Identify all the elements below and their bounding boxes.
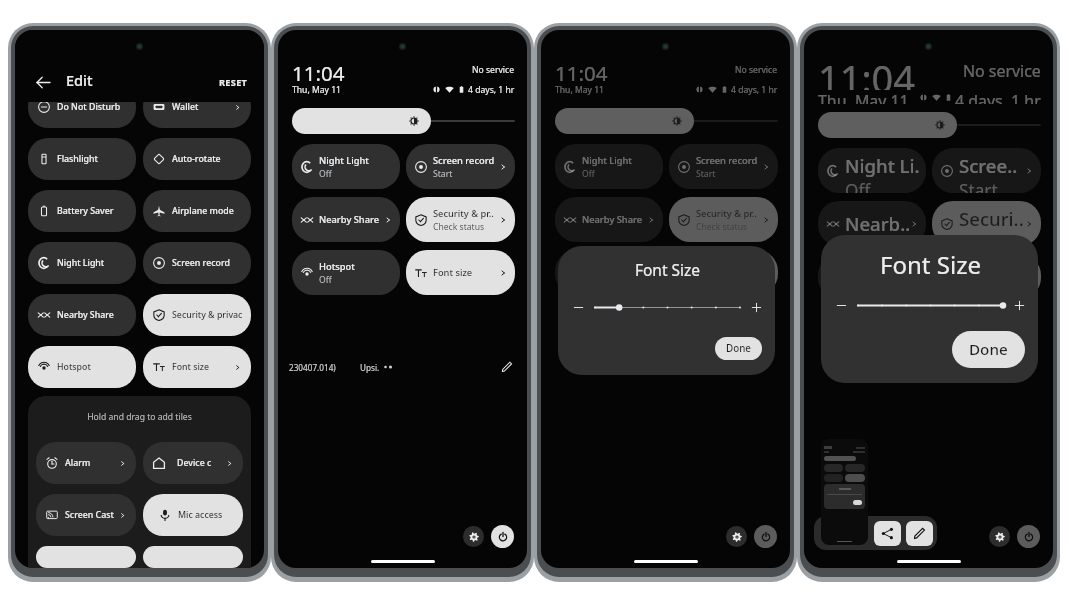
button[interactable]: Edit — [499, 359, 515, 375]
staticText: Nearby Share — [319, 213, 380, 226]
staticText: Start — [433, 168, 453, 180]
button[interactable]: RESET — [215, 74, 252, 91]
button[interactable] — [36, 546, 136, 568]
staticText: Start — [696, 168, 716, 180]
button[interactable]: Edit screenshot — [906, 521, 933, 546]
button[interactable]: Security & privacy — [143, 294, 251, 336]
staticText: 11:04 — [555, 59, 608, 81]
staticText: Start — [959, 179, 998, 193]
button[interactable]: Nearby Share — [555, 197, 663, 242]
staticText: 4 days, 1 hr — [955, 90, 1041, 104]
button[interactable]: Do Not Disturb — [28, 86, 136, 128]
button[interactable]: Security & pr.. — [406, 197, 515, 242]
staticText: Hotspot — [57, 361, 91, 373]
button[interactable]: Hotspot — [28, 346, 136, 388]
button[interactable]: Share — [874, 521, 901, 546]
button[interactable]: Flashlight — [28, 138, 136, 180]
button[interactable]: Power — [754, 525, 777, 548]
staticText: Font size — [172, 361, 210, 373]
button[interactable]: Airplane mode — [143, 190, 251, 232]
staticText: Screen record — [696, 154, 758, 167]
staticText: Edit — [66, 70, 93, 90]
button[interactable]: Settings — [989, 526, 1010, 547]
staticText: Screen Cast — [65, 509, 114, 521]
staticText: Night Li.. — [845, 153, 919, 178]
staticText: RESET — [219, 76, 248, 89]
button[interactable] — [143, 546, 243, 568]
button[interactable]: Settings — [463, 526, 484, 547]
button[interactable]: Back — [32, 71, 54, 93]
staticText: Hold and drag to add tiles — [28, 411, 251, 423]
button[interactable]: Brightness — [555, 108, 694, 134]
button[interactable]: Screen record — [406, 144, 515, 189]
staticText: Font size — [696, 266, 736, 279]
button[interactable]: Wallet — [143, 86, 251, 128]
button[interactable]: Night Light — [555, 144, 663, 189]
staticText: Hotspot — [319, 260, 355, 273]
button[interactable]: Hotspot — [818, 254, 926, 299]
button[interactable]: Security & pr.. — [669, 197, 778, 242]
staticText: Off — [319, 274, 332, 286]
staticText: Mic access — [178, 509, 223, 521]
staticText: 230407.014) — [289, 362, 336, 373]
button[interactable]: Screen record — [143, 242, 251, 284]
staticText: Check status — [959, 232, 1024, 246]
button[interactable]: Font size — [143, 346, 251, 388]
staticText: Screen record — [172, 257, 230, 269]
staticText: Airplane mode — [172, 205, 234, 217]
button[interactable]: Hotspot — [292, 250, 400, 295]
button[interactable]: Device c — [143, 442, 243, 484]
staticText: Off — [582, 168, 595, 180]
button[interactable]: Power — [1017, 525, 1040, 548]
staticText: Scree.. — [959, 153, 1018, 178]
button[interactable]: Font size — [669, 250, 778, 295]
button[interactable]: Hotspot — [555, 250, 663, 295]
staticText: Battery Saver — [57, 205, 114, 217]
staticText: Off — [845, 179, 871, 193]
staticText: 11:04 — [818, 52, 915, 90]
staticText: Font Size — [573, 259, 762, 280]
button[interactable]: Done — [715, 337, 762, 360]
button[interactable]: Done — [952, 331, 1025, 368]
button[interactable]: Font size — [406, 250, 515, 295]
button[interactable]: Battery Saver — [28, 190, 136, 232]
staticText: Font size — [959, 264, 1024, 289]
button[interactable]: Scree.. — [932, 148, 1041, 193]
button[interactable]: Mic access — [143, 494, 243, 536]
button[interactable]: Nearby Share — [292, 197, 400, 242]
staticText: 4 days, 1 hr — [468, 84, 515, 95]
button[interactable]: Brightness — [292, 108, 431, 134]
staticText: Wallet — [172, 101, 199, 113]
staticText: Upsi. — [360, 362, 380, 373]
staticText: Screen record — [433, 154, 495, 167]
button[interactable]: Power — [491, 525, 514, 548]
button[interactable]: Night Light — [292, 144, 400, 189]
staticText: Done — [969, 339, 1008, 360]
staticText: No service — [735, 64, 778, 76]
staticText: Thu, May 11 — [818, 90, 909, 104]
staticText: Check status — [433, 221, 485, 233]
staticText: Security & pr.. — [696, 207, 757, 220]
button[interactable]: Nearby Share — [28, 294, 136, 336]
staticText: Hotspot — [845, 259, 917, 284]
staticText: 11:04 — [292, 59, 345, 81]
button[interactable]: Font size — [932, 254, 1041, 299]
staticText: Nearby Share — [57, 309, 114, 321]
button[interactable]: Night Li.. — [818, 148, 926, 193]
button[interactable]: Auto-rotate — [143, 138, 251, 180]
staticText: Securi.. — [959, 206, 1024, 231]
button[interactable]: Nearb.. — [818, 201, 926, 246]
button[interactable]: Settings — [726, 526, 747, 547]
button[interactable]: Screen record — [669, 144, 778, 189]
staticText: No service — [963, 60, 1041, 82]
staticText: No service — [472, 64, 515, 76]
button[interactable]: Screen Cast — [36, 494, 136, 536]
button[interactable]: Securi.. — [932, 201, 1041, 246]
button[interactable]: Night Light — [28, 242, 136, 284]
staticText: Font size — [433, 266, 473, 279]
button[interactable]: Brightness — [818, 112, 957, 138]
staticText: Nearb.. — [845, 211, 909, 236]
button[interactable]: Alarm — [36, 442, 136, 484]
